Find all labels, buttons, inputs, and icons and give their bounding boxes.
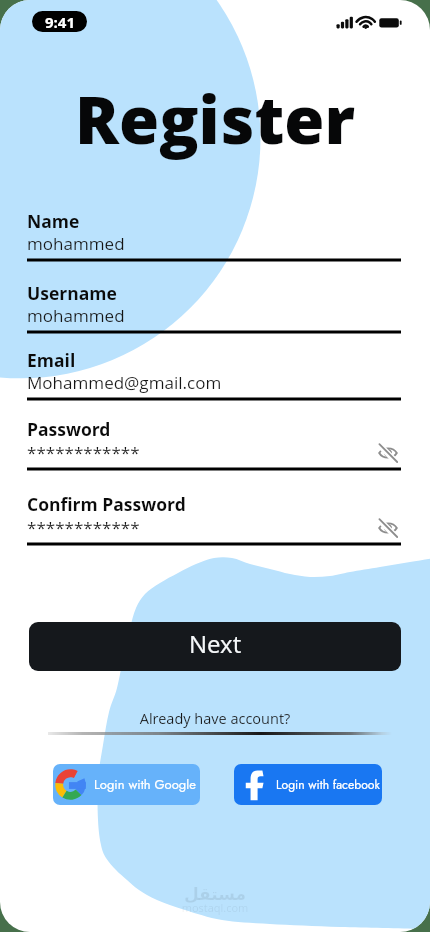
staticText: Login with facebook [276,776,380,794]
staticText: mohammed [27,304,125,327]
staticText: mohammed [27,232,125,255]
staticText: Register [0,75,430,164]
staticText: Name [27,209,80,233]
staticText: 9:41 [45,12,75,32]
button[interactable]: Show password [378,518,398,538]
staticText: ************ [27,441,140,464]
staticText: Login with Google [94,775,196,794]
staticText: Confirm Password [27,492,186,516]
staticText: مستقل [0,884,430,904]
staticText: mostaql.com [0,900,430,915]
staticText: Password [27,417,111,441]
button[interactable]: Already have account? [0,709,430,729]
staticText: Email [27,348,76,372]
staticText: ************ [27,516,140,539]
button[interactable]: Show password [378,443,398,463]
staticText: Mohammed@gmail.com [27,371,222,394]
button[interactable]: Login with Google [53,764,200,805]
button[interactable]: Login with facebook [234,764,382,805]
staticText: Next [189,627,242,660]
staticText: Username [27,281,117,305]
button[interactable]: Next [29,622,401,671]
